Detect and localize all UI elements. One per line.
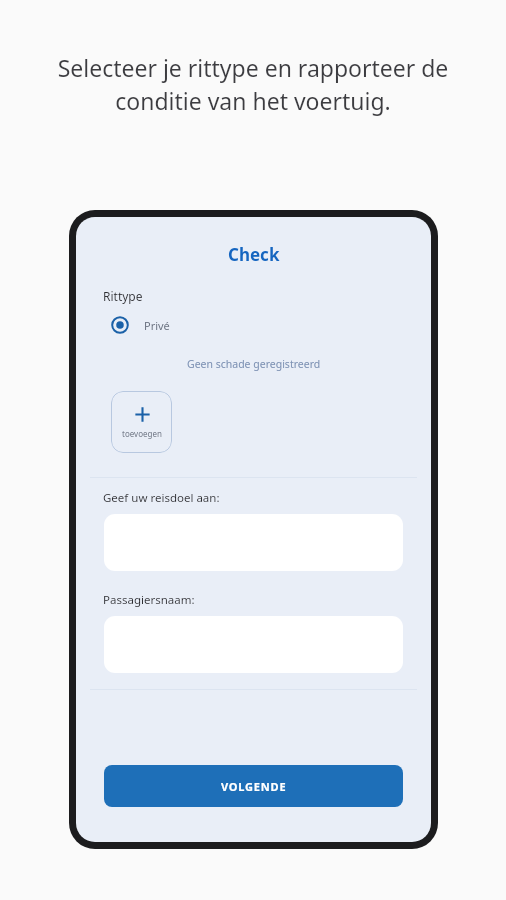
staticText: Check (228, 243, 280, 266)
staticText: Geen schade geregistreerd (187, 357, 321, 371)
button[interactable]: Toevoegen (111, 391, 172, 453)
button[interactable]: VOLGENDE (104, 765, 403, 807)
staticText: toevoegen (122, 428, 162, 439)
staticText: Selecteer je rittype en rapporteer de co… (44, 52, 462, 117)
staticText: Geef uw reisdoel aan: (103, 490, 220, 506)
staticText: Passagiersnaam: (103, 592, 195, 608)
button[interactable]: Privé (110, 315, 170, 335)
staticText: Rittype (103, 288, 143, 304)
staticText: Privé (144, 318, 170, 333)
staticText: VOLGENDE (221, 779, 287, 794)
